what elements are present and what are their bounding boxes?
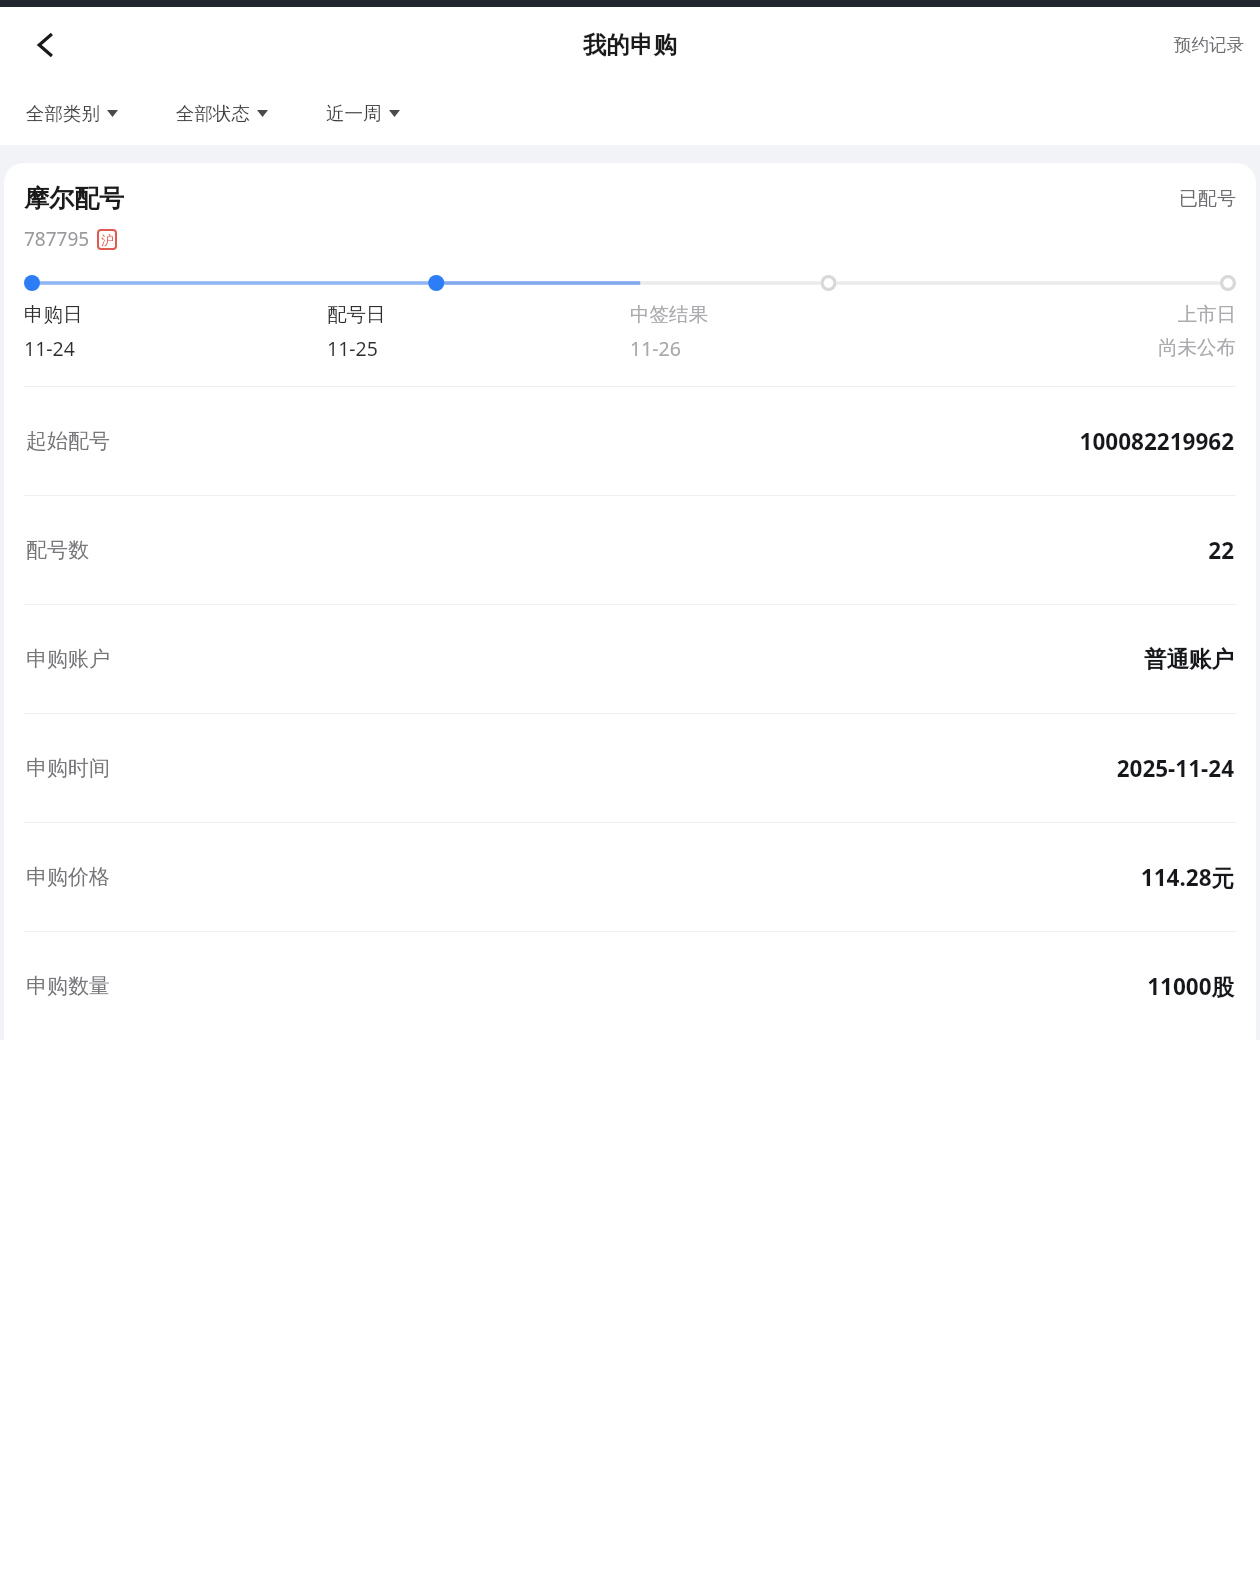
button[interactable]: 配号数 — [24, 496, 1236, 604]
button[interactable]: 申购价格 — [24, 823, 1236, 931]
staticText: 配号日 — [327, 302, 386, 327]
button[interactable]: 申购账户 — [24, 605, 1236, 713]
staticText: 预约记录 — [1174, 34, 1244, 56]
staticText: 配号数 — [26, 537, 89, 563]
staticText: 22 — [1208, 535, 1234, 566]
staticText: 申购时间 — [26, 755, 110, 781]
button[interactable]: 申购数量 — [24, 932, 1236, 1040]
staticText: 尚未公布 — [1158, 335, 1236, 360]
button[interactable]: 预约记录 — [1158, 24, 1260, 66]
staticText: 11000股 — [1147, 971, 1234, 1002]
staticText: 起始配号 — [26, 428, 110, 454]
staticText: 沪 — [101, 232, 114, 248]
staticText: 我的申购 — [583, 30, 677, 60]
staticText: 787795 — [24, 226, 90, 252]
staticText: 近一周 — [326, 102, 382, 125]
button[interactable]: 起始配号 — [24, 387, 1236, 495]
staticText: 普通账户 — [1144, 645, 1234, 673]
staticText: 中签结果 — [630, 302, 708, 327]
button[interactable]: 全部类别 — [22, 96, 122, 131]
button[interactable]: 全部状态 — [172, 96, 272, 131]
staticText: 11-24 — [24, 335, 75, 362]
staticText: 全部状态 — [176, 102, 250, 125]
staticText: 申购日 — [24, 302, 83, 327]
button[interactable]: 近一周 — [322, 96, 404, 131]
staticText: 2025-11-24 — [1116, 753, 1234, 784]
staticText: 114.28元 — [1140, 862, 1234, 893]
staticText: 申购数量 — [26, 973, 110, 999]
staticText: 已配号 — [1179, 187, 1236, 211]
staticText: 11-26 — [630, 335, 681, 362]
button[interactable]: 申购时间 — [24, 714, 1236, 822]
staticText: 11-25 — [327, 335, 378, 362]
staticText: 申购价格 — [26, 864, 110, 890]
button[interactable]: Back — [20, 19, 72, 71]
staticText: 100082219962 — [1079, 426, 1234, 457]
staticText: 申购账户 — [26, 646, 110, 672]
staticText: 全部类别 — [26, 102, 100, 125]
staticText: 上市日 — [1177, 302, 1236, 327]
staticText: 摩尔配号 — [24, 183, 124, 214]
